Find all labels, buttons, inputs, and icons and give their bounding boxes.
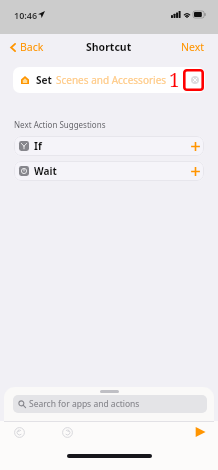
staticText: Wait <box>34 164 57 178</box>
button[interactable]: Run <box>194 425 207 438</box>
button[interactable]: Set <box>13 67 205 93</box>
staticText: Scenes and Accessories <box>56 73 167 87</box>
button[interactable]: Add Wait <box>190 166 201 177</box>
staticText: Shortcut <box>86 40 132 54</box>
staticText: 10:46 <box>14 9 38 21</box>
staticText: Search for apps and actions <box>29 398 140 410</box>
staticText: 1 <box>169 67 180 93</box>
button[interactable]: Undo <box>14 427 25 438</box>
staticText: Next <box>181 40 205 54</box>
button[interactable]: Search for apps and actions <box>13 395 207 413</box>
button[interactable]: Next <box>168 38 218 56</box>
button[interactable]: Redo <box>62 427 73 438</box>
button[interactable]: Add If <box>190 141 201 152</box>
button[interactable]: Back <box>0 38 52 56</box>
staticText: If <box>34 139 42 153</box>
staticText: Set <box>36 73 52 87</box>
button[interactable]: Wait <box>14 161 204 181</box>
button[interactable]: If <box>14 136 204 156</box>
button[interactable]: Clear <box>189 74 201 86</box>
staticText: Next Action Suggestions <box>14 119 106 130</box>
staticText: Back <box>20 40 44 54</box>
